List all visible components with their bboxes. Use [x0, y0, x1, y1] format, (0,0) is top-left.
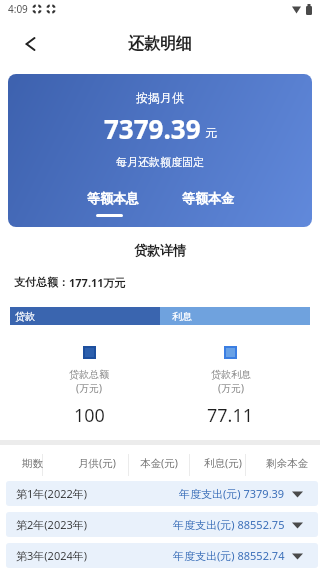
button[interactable]: 第3年(2024年) — [6, 543, 318, 568]
staticText: 贷款总额 — [69, 368, 109, 381]
staticText: (万元) — [218, 381, 244, 395]
staticText: 177.11万元 — [69, 275, 126, 290]
button[interactable]: 等额本息 — [87, 190, 139, 217]
staticText: 贷款利息 — [211, 368, 251, 381]
staticText: 期数 — [22, 457, 43, 470]
button[interactable] — [16, 30, 44, 58]
staticText: 第3年(2024年) — [16, 548, 88, 563]
staticText: 年度支出(元) 88552.75 — [173, 517, 285, 532]
staticText: 年度支出(元) 88552.74 — [173, 548, 285, 563]
staticText: 还款明细 — [128, 34, 192, 54]
button[interactable]: 第1年(2022年) — [6, 481, 318, 506]
staticText: 年度支出(元) 7379.39 — [179, 486, 285, 501]
staticText: 每月还款额度固定 — [116, 155, 204, 169]
staticText: 77.11 — [207, 403, 254, 428]
staticText: 元 — [205, 125, 217, 140]
staticText: 按揭月供 — [136, 90, 184, 105]
button[interactable]: 等额本金 — [182, 190, 234, 206]
staticText: 贷款 — [15, 310, 35, 323]
staticText: 利息(元) — [204, 456, 242, 470]
staticText: 等额本息 — [87, 190, 139, 206]
staticText: 月供(元) — [78, 456, 116, 470]
staticText: 100 — [74, 403, 105, 428]
staticText: 支付总额： — [14, 275, 69, 289]
button[interactable]: 第2年(2023年) — [6, 512, 318, 537]
staticText: 7379.39 — [104, 111, 201, 146]
staticText: 第1年(2022年) — [16, 486, 88, 501]
staticText: 本金(元) — [140, 456, 178, 470]
staticText: 第2年(2023年) — [16, 517, 88, 532]
staticText: (万元) — [76, 381, 102, 395]
staticText: 等额本金 — [182, 190, 234, 206]
staticText: 剩余本金 — [266, 457, 308, 470]
staticText: 贷款详情 — [0, 242, 320, 258]
staticText: 利息 — [172, 310, 192, 323]
staticText: 4:09 — [8, 2, 28, 16]
